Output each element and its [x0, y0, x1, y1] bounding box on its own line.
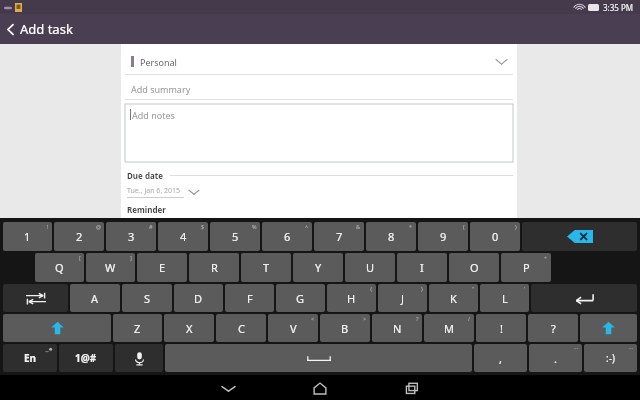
staticText: ' — [524, 285, 526, 292]
staticText: ( — [463, 223, 465, 230]
staticText: Tue., Jan 6, 2015 — [127, 186, 181, 196]
button[interactable]: G — [276, 284, 325, 312]
staticText: @ — [96, 223, 101, 230]
button[interactable]: Space — [165, 344, 472, 372]
button[interactable]: P — [501, 253, 551, 282]
button[interactable]: . — [529, 344, 582, 372]
staticText: 3 — [128, 229, 135, 244]
staticText: / — [468, 315, 471, 322]
staticText: { — [370, 285, 373, 292]
button[interactable]: 1@# — [59, 344, 113, 372]
button[interactable]: 6 — [262, 222, 312, 251]
button[interactable]: J — [378, 284, 427, 312]
staticText: E — [159, 260, 166, 275]
button[interactable]: Tue., Jan 6, 2015 — [125, 186, 199, 198]
staticText: Add task — [20, 20, 73, 38]
staticText: ! — [500, 321, 503, 336]
staticText: 1@# — [75, 351, 97, 365]
staticText: # — [149, 223, 153, 230]
button[interactable]: Z — [113, 314, 162, 342]
button[interactable]: Tab — [3, 284, 68, 312]
button[interactable]: Q — [35, 253, 84, 282]
button[interactable]: 3 — [106, 222, 156, 251]
button[interactable]: L — [480, 284, 529, 312]
button[interactable]: 9 — [418, 222, 468, 251]
staticText: P — [523, 260, 530, 275]
button[interactable]: S — [122, 284, 172, 312]
staticText: L — [502, 291, 508, 306]
staticText: S — [144, 291, 151, 306]
button[interactable]: En — [3, 344, 57, 372]
button[interactable]: 4 — [158, 222, 208, 251]
button[interactable]: K — [429, 284, 478, 312]
button[interactable]: 0 — [470, 222, 520, 251]
staticText: R — [211, 260, 218, 275]
staticText: C — [238, 321, 245, 336]
button[interactable]: M — [424, 314, 474, 342]
staticText: ) — [515, 223, 517, 230]
button[interactable]: E — [137, 253, 187, 282]
staticText: B — [341, 321, 349, 336]
staticText: O — [470, 260, 479, 275]
button[interactable]: Add summary — [125, 78, 513, 99]
staticText: Add notes — [132, 109, 175, 121]
button[interactable]: V — [268, 314, 318, 342]
staticText: J — [401, 291, 405, 306]
staticText: N — [393, 321, 402, 336]
staticText: G — [296, 291, 305, 306]
button[interactable]: Add notes — [125, 104, 513, 162]
button[interactable]: U — [345, 253, 395, 282]
button[interactable]: R — [189, 253, 239, 282]
button[interactable]: Enter — [531, 284, 637, 312]
button[interactable]: 2 — [54, 222, 104, 251]
button[interactable]: T — [241, 253, 291, 282]
staticText: ^ — [305, 223, 309, 230]
button[interactable]: Personal — [125, 49, 513, 74]
staticText: + — [544, 254, 548, 261]
button[interactable]: 5 — [210, 222, 260, 251]
staticText: " — [472, 285, 475, 292]
staticText: X — [186, 321, 193, 336]
staticText: } — [421, 285, 424, 292]
staticText: 2 — [76, 229, 83, 244]
button[interactable]: 7 — [314, 222, 364, 251]
button[interactable]: D — [174, 284, 223, 312]
button[interactable]: F — [225, 284, 274, 312]
button[interactable]: 8 — [366, 222, 416, 251]
button[interactable]: Recent apps — [397, 378, 427, 398]
button[interactable]: X — [164, 314, 214, 342]
button[interactable]: Y — [293, 253, 343, 282]
button[interactable]: , — [474, 344, 527, 372]
staticText: Reminder — [127, 204, 166, 213]
staticText: Z — [134, 321, 141, 336]
staticText: 8 — [388, 229, 395, 244]
button[interactable]: N — [372, 314, 422, 342]
staticText: 1 — [24, 229, 31, 244]
button[interactable]: O — [449, 253, 499, 282]
button[interactable]: Backspace — [522, 222, 637, 251]
button[interactable]: W — [86, 253, 135, 282]
staticText: Q — [55, 260, 64, 275]
button[interactable]: :-) — [584, 344, 637, 372]
button[interactable]: Voice input — [115, 344, 163, 372]
staticText: Add summary — [131, 83, 191, 95]
button[interactable]: Back — [6, 20, 73, 38]
button[interactable]: 1 — [3, 222, 52, 251]
staticText: En — [24, 351, 37, 365]
button[interactable]: Shift — [580, 314, 637, 342]
button[interactable]: Home — [305, 378, 335, 398]
button[interactable]: H — [327, 284, 376, 312]
button[interactable]: I — [397, 253, 447, 282]
button[interactable]: Shift — [3, 314, 111, 342]
button[interactable]: C — [216, 314, 266, 342]
button[interactable]: B — [320, 314, 370, 342]
button[interactable]: ? — [528, 314, 578, 342]
staticText: ] — [130, 254, 132, 261]
staticText: ... — [574, 344, 579, 351]
button[interactable]: Hide keyboard — [213, 378, 243, 398]
staticText: U — [366, 260, 375, 275]
staticText: 6 — [284, 229, 291, 244]
button[interactable]: ! — [476, 314, 526, 342]
button[interactable]: A — [70, 284, 120, 312]
staticText: ! — [47, 223, 49, 230]
